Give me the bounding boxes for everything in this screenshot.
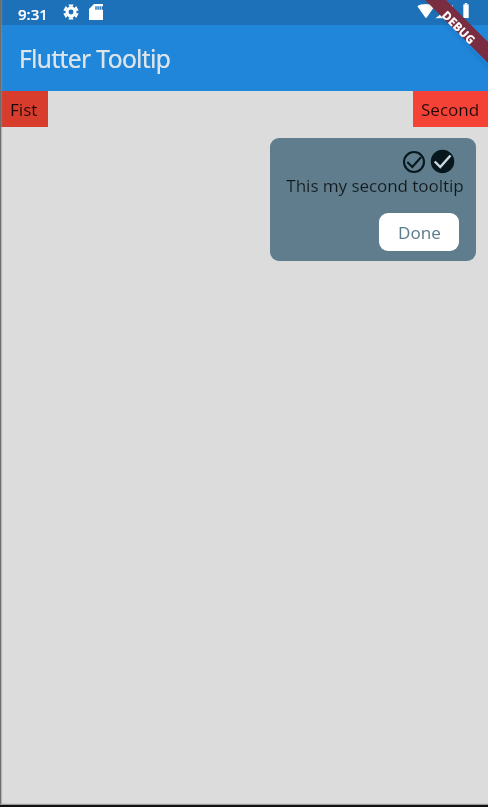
staticText: Second (421, 98, 480, 121)
staticText: Fist (10, 98, 38, 121)
staticText: 9:31 (18, 4, 48, 24)
button[interactable]: Second (413, 91, 488, 127)
button[interactable]: Done (379, 213, 459, 251)
staticText: Done (398, 221, 441, 244)
staticText: Flutter Tooltip (19, 42, 171, 75)
staticText: This my second tooltip (274, 174, 476, 197)
button[interactable]: Check outline (402, 150, 426, 174)
button[interactable]: Check (430, 149, 455, 174)
button[interactable]: Fist (0, 91, 48, 127)
